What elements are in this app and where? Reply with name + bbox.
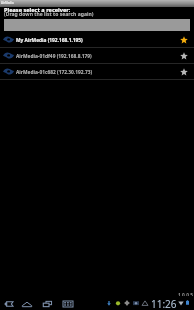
staticText: My AirMedia (192.168.1.195) (16, 37, 83, 44)
staticText: AirMedia (1, 1, 14, 5)
button[interactable]: My AirMedia (192.168.1.195) (0, 32, 194, 47)
button[interactable]: Back (2, 298, 15, 308)
button[interactable]: AirMedia-01c682 (172.30.192.73) (0, 64, 194, 79)
staticText: AirMedia-01c682 (172.30.192.73) (16, 69, 93, 76)
staticText: Please select a receiver: (4, 6, 71, 14)
button[interactable]: Recent apps (41, 298, 54, 308)
button[interactable]: AirMedia-01df49 (192.168.8.179) (0, 48, 194, 63)
staticText: AirMedia-01df49 (192.168.8.179) (16, 53, 92, 60)
staticText: 11:26 (151, 297, 177, 310)
staticText: (Drag down the list to search again) (4, 11, 94, 18)
button[interactable]: Home (20, 298, 33, 308)
button[interactable]: Keyboard (61, 298, 74, 308)
staticText: 1.0.0.5 (178, 292, 194, 299)
